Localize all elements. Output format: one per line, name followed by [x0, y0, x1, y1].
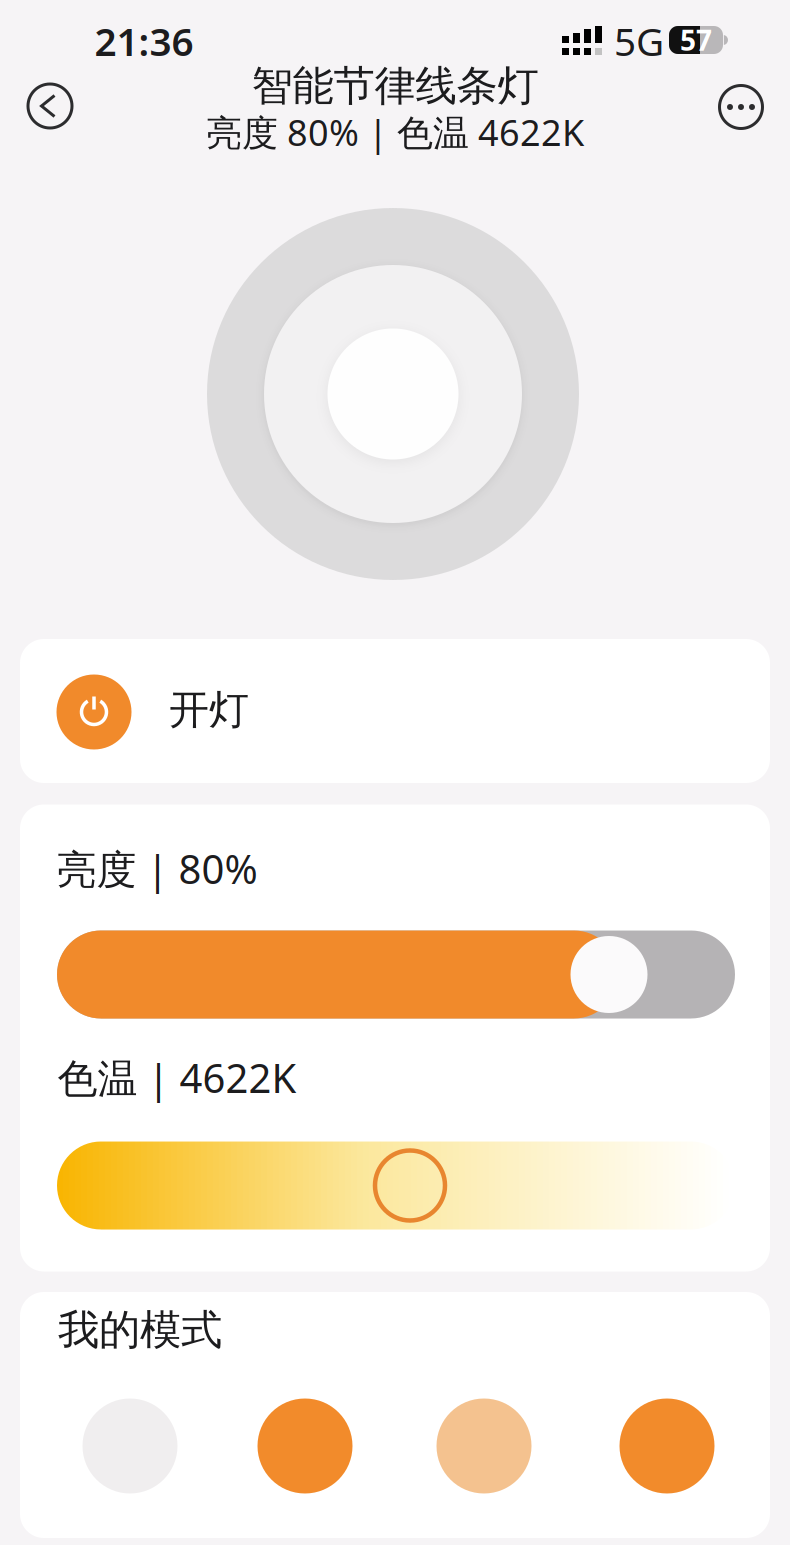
staticText: 亮度 80% | 色温 4622K: [206, 108, 584, 156]
staticText: 57: [680, 21, 712, 59]
staticText: 开灯: [169, 685, 249, 734]
button[interactable]: More: [713, 79, 769, 135]
button[interactable]: 模式 4: [619, 1398, 714, 1493]
button[interactable]: 色温: [57, 1141, 735, 1229]
button[interactable]: 模式 1: [82, 1398, 177, 1493]
staticText: 21:36: [94, 15, 193, 67]
button[interactable]: 模式 3: [436, 1398, 531, 1493]
staticText: 亮度 | 80%: [56, 842, 257, 895]
staticText: 我的模式: [58, 1305, 222, 1355]
button[interactable]: 开灯: [54, 672, 134, 752]
staticText: 5G: [614, 15, 664, 67]
staticText: 色温 | 4622K: [57, 1051, 296, 1104]
button[interactable]: 亮度: [57, 930, 735, 1018]
staticText: 智能节律线条灯: [251, 61, 538, 111]
button[interactable]: 模式 2: [257, 1398, 352, 1493]
button[interactable]: Back: [22, 78, 78, 134]
